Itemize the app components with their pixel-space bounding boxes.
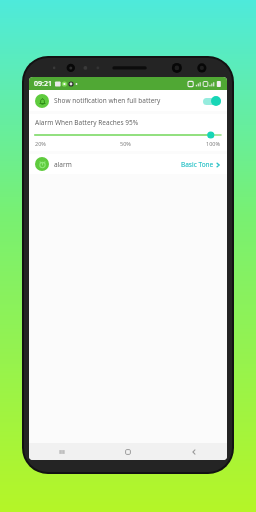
staticText: alarm xyxy=(54,160,72,169)
button[interactable]: Toggle notification xyxy=(203,95,221,107)
staticText: Alarm When Battery Reaches 95% xyxy=(35,118,139,127)
staticText: Basic Tone xyxy=(181,160,214,169)
button[interactable]: Back xyxy=(161,443,227,460)
staticText: 50% xyxy=(120,140,131,147)
staticText: 09:21 xyxy=(34,79,52,89)
staticText: Show notification when full battery xyxy=(54,96,161,105)
button[interactable]: Alarm When Battery Reaches 95% xyxy=(29,114,227,151)
button[interactable]: Home xyxy=(95,443,161,460)
button[interactable]: alarm xyxy=(29,154,227,174)
staticText: 20% xyxy=(35,140,46,147)
button[interactable]: Show notification when full battery xyxy=(29,90,227,111)
staticText: 100% xyxy=(206,140,221,147)
button[interactable]: Recents xyxy=(29,443,95,460)
